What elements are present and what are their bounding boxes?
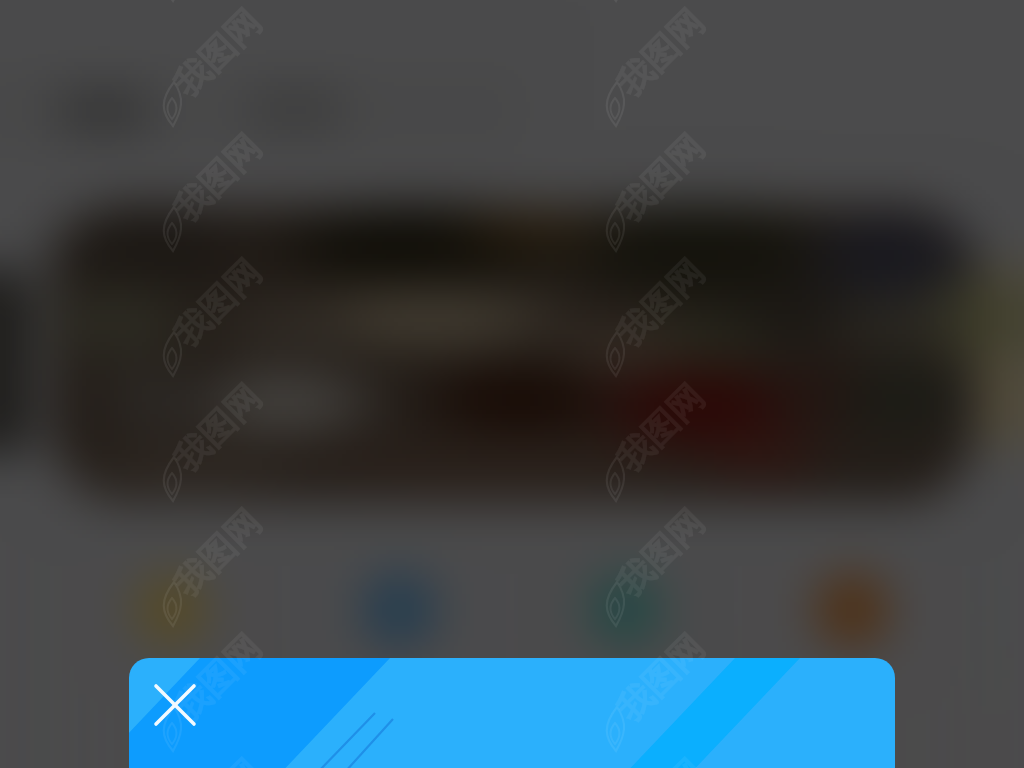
button[interactable] xyxy=(129,658,895,768)
button[interactable]: Close xyxy=(148,678,202,732)
